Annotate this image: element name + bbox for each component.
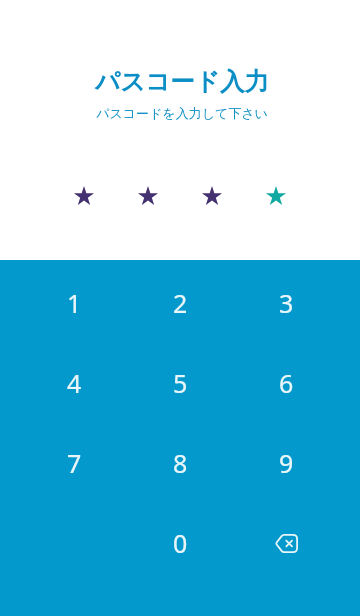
staticText: 1 — [67, 286, 82, 320]
staticText: 8 — [173, 446, 188, 480]
button[interactable]: 5 — [127, 343, 233, 423]
staticText: 0 — [173, 526, 188, 560]
staticText: 4 — [67, 366, 82, 400]
button[interactable]: 1 — [21, 263, 127, 343]
staticText: 7 — [67, 446, 82, 480]
button[interactable]: Delete — [233, 503, 339, 583]
staticText: 5 — [173, 366, 188, 400]
staticText: 6 — [279, 366, 294, 400]
staticText: パスコードを入力して下さい — [96, 105, 268, 121]
staticText: 9 — [279, 446, 294, 480]
staticText: パスコード入力 — [95, 66, 269, 97]
staticText: 3 — [279, 286, 294, 320]
button[interactable]: 0 — [127, 503, 233, 583]
button[interactable]: 2 — [127, 263, 233, 343]
button[interactable]: 4 — [21, 343, 127, 423]
staticText: 2 — [173, 286, 188, 320]
button[interactable]: 9 — [233, 423, 339, 503]
button[interactable]: 8 — [127, 423, 233, 503]
button[interactable]: 7 — [21, 423, 127, 503]
button[interactable]: 3 — [233, 263, 339, 343]
button[interactable]: 6 — [233, 343, 339, 423]
